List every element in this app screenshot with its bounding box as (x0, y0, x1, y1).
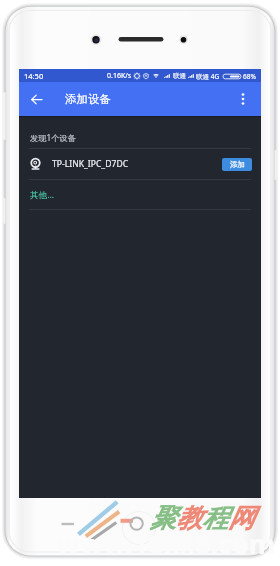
staticText: 网 (228, 502, 254, 535)
button[interactable]: More options (233, 89, 253, 109)
staticText: 0.16K/s (107, 71, 132, 81)
button[interactable]: 其他... (19, 180, 261, 209)
staticText: 程 (202, 502, 228, 535)
staticText: TP-LINK_IPC_D7DC (52, 158, 129, 170)
staticText: 发现1个设备 (30, 132, 76, 143)
button[interactable]: Back (24, 87, 48, 111)
staticText: 教 (176, 502, 202, 535)
staticText: www.16xx8.com (57, 525, 276, 562)
staticText: 其他... (30, 189, 55, 201)
staticText: 添加 (230, 160, 245, 169)
button[interactable]: TP-LINK_IPC_D7DC (19, 149, 261, 179)
staticText: 联通 4G (196, 72, 220, 81)
staticText: 聚 (150, 502, 176, 535)
staticText: 68% (243, 72, 256, 81)
staticText: 14:50 (24, 71, 44, 81)
staticText: 添加设备 (65, 92, 111, 106)
staticText: 联通 (173, 72, 186, 80)
button[interactable]: 添加 (222, 158, 252, 171)
